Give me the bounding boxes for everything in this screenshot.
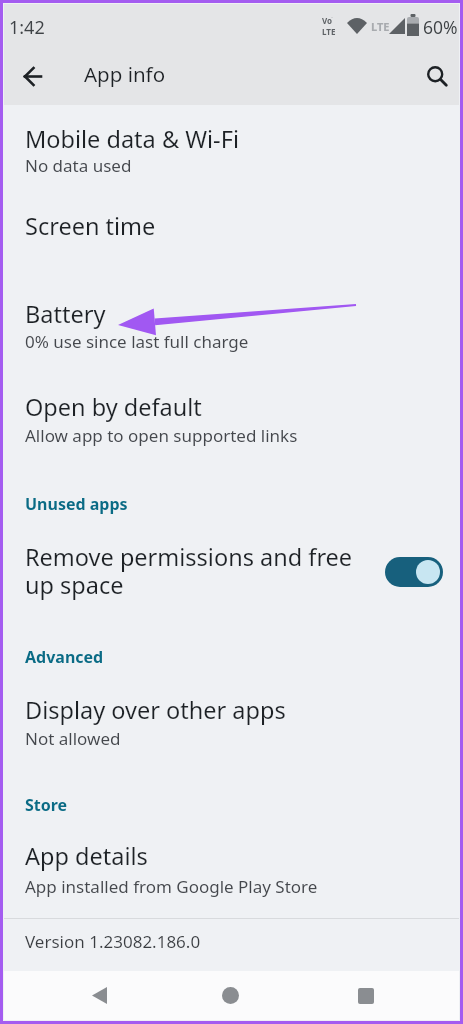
staticText: Advanced	[25, 646, 104, 668]
staticText: Remove permissions and free	[25, 541, 353, 573]
staticText: App installed from Google Play Store	[25, 875, 318, 898]
button[interactable]	[4, 292, 459, 376]
staticText: 0% use since last full charge	[25, 330, 249, 353]
button[interactable]	[4, 688, 459, 768]
staticText: Mobile data & Wi-Fi	[25, 123, 239, 155]
button[interactable]	[342, 971, 390, 1020]
staticText: Open by default	[25, 391, 202, 423]
button[interactable]	[206, 971, 254, 1020]
staticText: 60%	[423, 15, 458, 39]
staticText: Voׄ	[322, 15, 333, 26]
button[interactable]	[4, 116, 459, 200]
staticText: Unused apps	[25, 493, 128, 515]
staticText: Version 1.23082.186.0	[25, 930, 201, 953]
button[interactable]	[4, 834, 459, 918]
staticText: Store	[25, 794, 68, 816]
staticText: LTE	[322, 26, 336, 37]
staticText: Screen time	[25, 210, 156, 242]
staticText: 1:42	[9, 15, 45, 40]
staticText: Display over other apps	[25, 694, 286, 726]
staticText: No data used	[25, 154, 132, 177]
staticText: App details	[25, 840, 148, 872]
staticText: Allow app to open supported links	[25, 424, 298, 447]
staticText: Battery	[25, 298, 106, 330]
staticText: App info	[84, 60, 166, 88]
button[interactable]	[4, 204, 459, 274]
button[interactable]	[415, 54, 459, 98]
staticText: Not allowed	[25, 727, 121, 750]
button[interactable]	[4, 534, 459, 616]
button[interactable]	[385, 557, 443, 587]
staticText: up space	[25, 569, 124, 601]
button[interactable]	[10, 54, 54, 98]
staticText: LTE	[371, 19, 390, 34]
button[interactable]	[75, 971, 123, 1020]
button[interactable]	[4, 386, 459, 470]
